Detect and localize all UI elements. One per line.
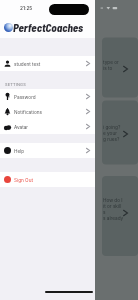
staticText: student test: [14, 61, 41, 67]
staticText: Avatar: [14, 124, 29, 130]
staticText: Notifications: [14, 109, 42, 115]
staticText: i going? e your g rues?: [103, 124, 121, 142]
staticText: 21:25: [20, 5, 33, 11]
staticText: type or is to: [103, 59, 119, 71]
staticText: How do I it or skill s s already: [103, 197, 124, 221]
staticText: SETTINGS: [5, 82, 26, 87]
button[interactable]: Help: [0, 143, 95, 158]
button[interactable]: Notifications: [0, 104, 95, 119]
button[interactable]: Password: [0, 89, 95, 104]
staticText: Password: [14, 94, 36, 100]
button[interactable]: Sign Out: [0, 172, 95, 187]
button[interactable]: student test: [0, 56, 95, 71]
button[interactable]: Avatar: [0, 119, 95, 134]
staticText: Sign Out: [14, 177, 33, 183]
staticText: Help: [14, 148, 25, 154]
staticText: PerfectCoaches: [13, 21, 84, 34]
